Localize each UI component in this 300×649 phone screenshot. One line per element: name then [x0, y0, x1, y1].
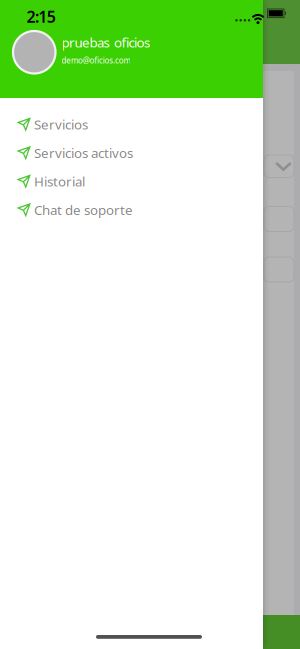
button[interactable]: Historial — [0, 167, 263, 195]
staticText: Servicios activos — [34, 144, 133, 162]
button[interactable]: Servicios activos — [0, 138, 263, 167]
staticText: Servicios — [34, 115, 88, 133]
button[interactable]: Servicios — [0, 110, 263, 138]
staticText: pruebas oficios — [61, 33, 150, 51]
staticText: demo@oficios.com — [61, 55, 130, 66]
button[interactable]: Chat de soporte — [0, 195, 263, 224]
staticText: 2:15 — [26, 6, 56, 27]
staticText: Historial — [34, 172, 85, 190]
staticText: Chat de soporte — [34, 201, 133, 219]
button[interactable]: Perfil — [13, 31, 55, 73]
